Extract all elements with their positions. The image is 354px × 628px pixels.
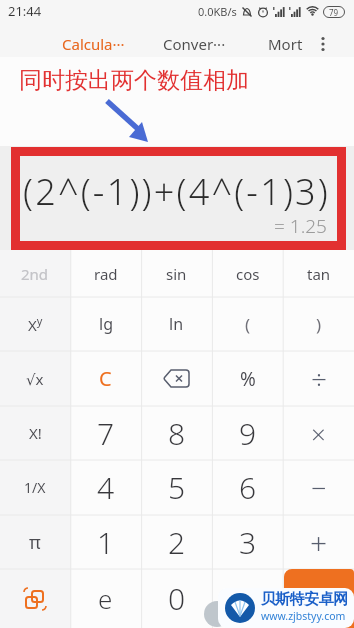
button[interactable]: 贝斯特安卓网: [218, 588, 354, 628]
button[interactable]: 1/X: [0, 460, 70, 515]
staticText: +: [310, 522, 328, 563]
staticText: rad: [94, 264, 118, 284]
button[interactable]: 1: [70, 515, 141, 569]
button[interactable]: 2nd: [0, 250, 70, 297]
staticText: (: [245, 313, 251, 336]
button[interactable]: [0, 569, 70, 628]
button[interactable]: [318, 36, 328, 52]
staticText: = 1.25: [274, 213, 327, 239]
staticText: e: [98, 581, 113, 616]
button[interactable]: .: [212, 569, 283, 628]
button[interactable]: X!: [0, 406, 70, 460]
button[interactable]: sin: [141, 250, 212, 297]
staticText: 8: [168, 413, 186, 454]
staticText: ×: [311, 416, 326, 451]
staticText: −: [311, 469, 327, 506]
staticText: 贝斯特安卓网: [261, 590, 348, 609]
button[interactable]: 3: [212, 515, 283, 569]
button[interactable]: Calcula···: [62, 34, 125, 54]
staticText: 同时按出两个数值相加: [19, 66, 249, 95]
staticText: Xy: [28, 313, 43, 335]
staticText: .: [244, 580, 251, 618]
staticText: C: [99, 365, 112, 392]
staticText: 0: [168, 578, 186, 619]
staticText: tan: [307, 264, 331, 284]
staticText: 1/X: [24, 478, 46, 497]
staticText: 1: [97, 522, 115, 563]
button[interactable]: lg: [70, 297, 141, 351]
staticText: X!: [29, 423, 42, 443]
staticText: 5: [168, 467, 186, 508]
button[interactable]: 2: [141, 515, 212, 569]
button[interactable]: (: [212, 297, 283, 351]
staticText: 6: [239, 467, 257, 508]
staticText: sin: [166, 264, 187, 284]
staticText: (2^(-1))+(4^(-1)3): [23, 167, 331, 216]
button[interactable]: ÷: [283, 351, 354, 406]
button[interactable]: ×: [283, 406, 354, 460]
staticText: lg: [99, 313, 113, 335]
staticText: 9: [239, 413, 257, 454]
staticText: 2nd: [21, 264, 49, 284]
staticText: %: [240, 366, 256, 392]
button[interactable]: −: [283, 460, 354, 515]
staticText: 4: [97, 467, 115, 508]
button[interactable]: C: [70, 351, 141, 406]
staticText: =: [311, 580, 327, 618]
button[interactable]: 6: [212, 460, 283, 515]
staticText: ÷: [311, 360, 327, 398]
staticText: π: [29, 530, 41, 555]
button[interactable]: π: [0, 515, 70, 569]
staticText: 2: [168, 522, 186, 563]
staticText: 0.0KB/s: [198, 4, 237, 19]
staticText: √x: [26, 369, 44, 389]
staticText: ): [316, 313, 322, 336]
button[interactable]: 8: [141, 406, 212, 460]
button[interactable]: e: [70, 569, 141, 628]
staticText: cos: [236, 264, 260, 284]
button[interactable]: 7: [70, 406, 141, 460]
button[interactable]: ln: [141, 297, 212, 351]
button[interactable]: rad: [70, 250, 141, 297]
button[interactable]: 4: [70, 460, 141, 515]
button[interactable]: %: [212, 351, 283, 406]
staticText: 7: [97, 413, 115, 454]
button[interactable]: 5: [141, 460, 212, 515]
button[interactable]: √x: [0, 351, 70, 406]
staticText: 21:44: [8, 2, 42, 20]
staticText: www.zjbstyy.com: [261, 609, 346, 623]
button[interactable]: =: [284, 569, 354, 628]
button[interactable]: [141, 351, 212, 406]
button[interactable]: Xy: [0, 297, 70, 351]
button[interactable]: +: [283, 515, 354, 569]
button[interactable]: 0: [141, 569, 212, 628]
staticText: 3: [239, 522, 257, 563]
staticText: 79: [329, 7, 339, 18]
button[interactable]: tan: [283, 250, 354, 297]
staticText: ln: [169, 313, 184, 335]
button[interactable]: Mort: [268, 34, 303, 54]
button[interactable]: cos: [212, 250, 283, 297]
button[interactable]: Conver···: [163, 34, 226, 54]
button[interactable]: 9: [212, 406, 283, 460]
button[interactable]: ): [283, 297, 354, 351]
